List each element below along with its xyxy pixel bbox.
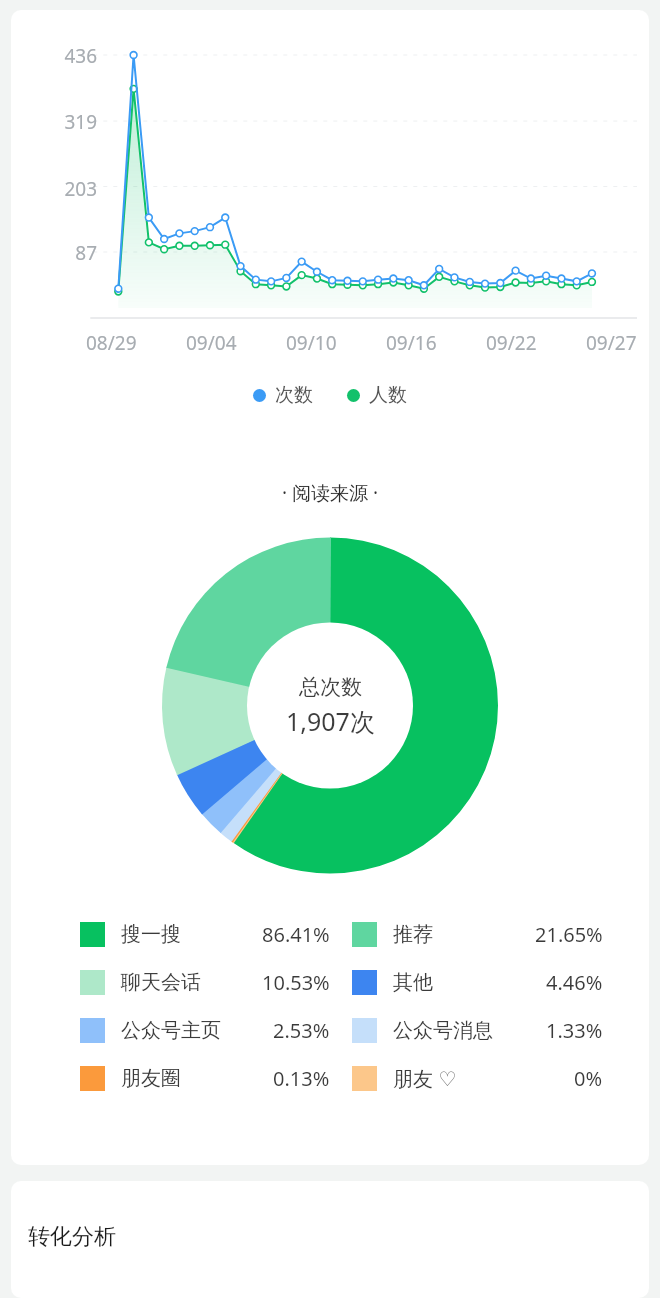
staticText: 09/16 — [386, 330, 437, 356]
staticText: 08/29 — [86, 330, 137, 356]
staticText: 87 — [11, 240, 97, 266]
staticText: 次数 — [275, 383, 313, 407]
button[interactable]: 聊天会话 — [80, 969, 330, 996]
staticText: 聊天会话 — [121, 970, 201, 995]
staticText: 203 — [11, 176, 97, 202]
staticText: 09/22 — [486, 330, 537, 356]
staticText: 319 — [11, 109, 97, 135]
staticText: 公众号消息 — [393, 1018, 493, 1043]
button[interactable]: 搜一搜 — [80, 921, 330, 948]
staticText: 09/27 — [586, 330, 637, 356]
button[interactable]: 推荐 — [352, 921, 603, 948]
staticText: 公众号主页 — [121, 1018, 221, 1043]
staticText: 转化分析 — [28, 1223, 116, 1251]
staticText: 推荐 — [393, 922, 433, 947]
button[interactable]: 朋友圈 — [80, 1065, 330, 1092]
staticText: 21.65% — [535, 921, 603, 948]
button[interactable]: 公众号消息 — [352, 1017, 603, 1044]
staticText: 朋友 ♡ — [393, 1065, 457, 1092]
staticText: 搜一搜 — [121, 922, 181, 947]
staticText: 09/04 — [186, 330, 237, 356]
staticText: 4.46% — [546, 969, 603, 996]
staticText: 人数 — [369, 383, 407, 407]
staticText: 0% — [574, 1065, 603, 1092]
staticText: 10.53% — [262, 969, 330, 996]
staticText: 0.13% — [273, 1065, 330, 1092]
staticText: 1,907次 — [286, 704, 375, 738]
staticText: 朋友圈 — [121, 1066, 181, 1091]
button[interactable]: 其他 — [352, 969, 603, 996]
staticText: 其他 — [393, 970, 433, 995]
staticText: 总次数 — [299, 674, 362, 700]
staticText: · 阅读来源 · — [11, 480, 649, 506]
staticText: 2.53% — [273, 1017, 330, 1044]
staticText: 1.33% — [546, 1017, 603, 1044]
button[interactable]: 人数 — [347, 383, 407, 407]
button[interactable]: 公众号主页 — [80, 1017, 330, 1044]
staticText: 09/10 — [286, 330, 337, 356]
staticText: 436 — [11, 43, 97, 69]
button[interactable]: 次数 — [253, 383, 313, 407]
button[interactable]: 朋友 ♡ — [352, 1065, 603, 1092]
staticText: 86.41% — [262, 921, 330, 948]
